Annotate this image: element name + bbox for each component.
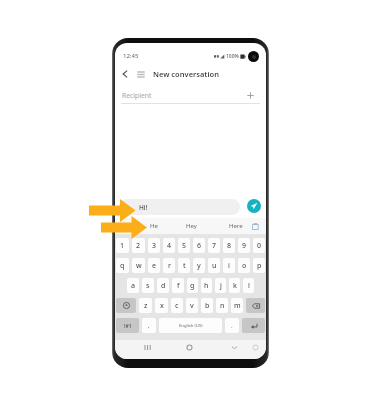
button[interactable]: Shift (116, 298, 136, 313)
button[interactable]: Contacts list (135, 64, 147, 84)
button[interactable]: 3 (148, 238, 160, 253)
button[interactable]: Home (183, 340, 196, 354)
staticText: l (248, 281, 250, 291)
button[interactable]: 1 (116, 238, 129, 253)
button[interactable]: Hide keyboard (249, 340, 262, 354)
staticText: Hey (186, 222, 197, 230)
staticText: y (197, 261, 201, 271)
staticText: 1 (120, 241, 125, 251)
button[interactable]: o (238, 258, 250, 273)
staticText: s (146, 281, 150, 291)
button[interactable]: !#1 (116, 318, 139, 333)
staticText: 100% (226, 53, 239, 60)
staticText: m (234, 301, 241, 311)
button[interactable]: v (186, 298, 198, 313)
button[interactable]: m (231, 298, 243, 313)
button[interactable]: Enter (242, 318, 265, 333)
staticText: x (160, 301, 164, 311)
button[interactable]: 5 (178, 238, 190, 253)
staticText: 9 (242, 241, 247, 251)
staticText: i (228, 261, 230, 271)
button[interactable]: p (253, 258, 265, 273)
button[interactable]: Back (119, 64, 131, 84)
staticText: . (231, 322, 233, 330)
button[interactable]: q (116, 258, 129, 273)
button[interactable]: 6 (193, 238, 205, 253)
staticText: j (220, 281, 222, 291)
staticText: 6 (197, 241, 202, 251)
staticText: 4 (167, 241, 172, 251)
button[interactable]: English (US) (159, 318, 222, 333)
button[interactable]: d (157, 278, 169, 293)
staticText: a (131, 281, 136, 291)
button[interactable]: j (215, 278, 226, 293)
staticText: v (190, 301, 194, 311)
button[interactable]: Back (228, 340, 241, 354)
staticText: n (220, 301, 225, 311)
button[interactable]: New conversation (153, 64, 219, 84)
button[interactable]: e (148, 258, 160, 273)
staticText: d (161, 281, 166, 291)
button[interactable]: Clipboard (249, 218, 262, 234)
button[interactable]: g (187, 278, 198, 293)
staticText: 8 (227, 241, 232, 251)
staticText: p (257, 261, 262, 271)
button[interactable]: He (143, 218, 165, 234)
button[interactable]: k (229, 278, 240, 293)
button[interactable]: Backspace (246, 298, 265, 313)
staticText: c (175, 301, 179, 311)
button[interactable]: Here (223, 218, 248, 234)
button[interactable]: Hi! (119, 199, 240, 215)
button[interactable]: s (142, 278, 154, 293)
button[interactable]: n (216, 298, 228, 313)
button[interactable]: y (193, 258, 205, 273)
button[interactable]: h (201, 278, 212, 293)
staticText: e (152, 261, 157, 271)
staticText: He (150, 222, 158, 230)
button[interactable]: Add recipient (245, 90, 256, 101)
button[interactable]: 8 (223, 238, 235, 253)
button[interactable]: x (155, 298, 168, 313)
button[interactable]: z (139, 298, 152, 313)
staticText: 3 (152, 241, 157, 251)
button[interactable]: 7 (208, 238, 220, 253)
button[interactable]: b (201, 298, 213, 313)
button[interactable]: a (127, 278, 139, 293)
button[interactable]: Hey (180, 218, 203, 234)
staticText: f (177, 281, 180, 291)
staticText: k (233, 281, 237, 291)
button[interactable]: 9 (238, 238, 250, 253)
button[interactable]: i (223, 258, 235, 273)
staticText: Here (229, 222, 243, 230)
staticText: r (168, 261, 171, 271)
button[interactable]: . (225, 318, 239, 333)
staticText: q (120, 261, 125, 271)
button[interactable]: c (171, 298, 183, 313)
button[interactable]: Recent apps (141, 340, 154, 354)
staticText: 12:45 (123, 52, 139, 60)
button[interactable]: u (208, 258, 220, 273)
button[interactable]: w (132, 258, 145, 273)
button[interactable]: f (172, 278, 184, 293)
staticText: h (204, 281, 209, 291)
button[interactable]: t (178, 258, 190, 273)
staticText: New conversation (153, 69, 219, 79)
staticText: 0 (257, 241, 262, 251)
staticText: , (148, 322, 150, 330)
button[interactable]: 0 (253, 238, 265, 253)
staticText: w (136, 261, 142, 271)
staticText: 5 (182, 241, 187, 251)
button[interactable]: 2 (132, 238, 145, 253)
button[interactable]: Send (247, 199, 261, 213)
staticText: u (212, 261, 217, 271)
staticText: Hi! (139, 203, 148, 212)
staticText: g (190, 281, 195, 291)
button[interactable]: 4 (163, 238, 175, 253)
button[interactable]: , (142, 318, 156, 333)
staticText: Recipient (122, 91, 152, 100)
button[interactable]: r (163, 258, 175, 273)
button[interactable]: l (243, 278, 254, 293)
staticText: 7 (212, 241, 217, 251)
staticText: English (US) (179, 323, 203, 329)
staticText: !#1 (124, 322, 132, 329)
